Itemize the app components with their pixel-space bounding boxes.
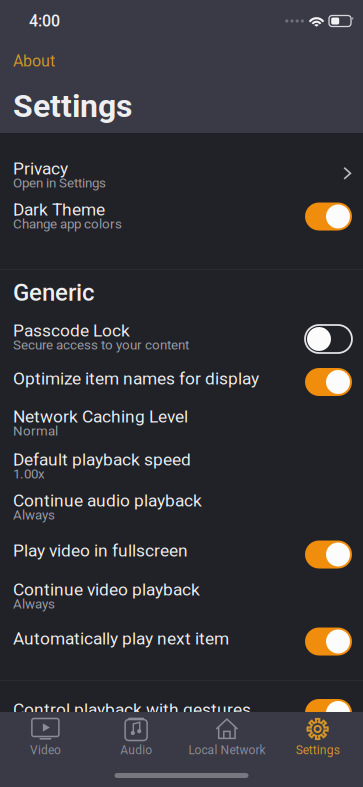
staticText: Dark Theme [13, 199, 105, 220]
button[interactable]: Automatically play next item [0, 623, 363, 660]
button[interactable]: About [0, 42, 363, 80]
staticText: Save video position [13, 737, 161, 758]
staticText: Control playback with gestures [13, 699, 251, 720]
staticText: Settings [13, 87, 132, 125]
staticText: Continue audio playback [13, 490, 202, 511]
button[interactable]: Privacy [0, 153, 363, 194]
staticText: Privacy [13, 158, 68, 179]
button[interactable]: Passcode Lock [0, 315, 363, 363]
staticText: Always [13, 596, 55, 612]
button[interactable]: Video [0, 719, 91, 757]
staticText: Automatically play next item [13, 628, 229, 649]
staticText: Continue video playback [13, 579, 200, 600]
staticText: Change app colors [13, 216, 122, 232]
staticText: Normal [13, 423, 58, 439]
button[interactable]: Network Caching Level [0, 401, 363, 444]
button[interactable]: Continue video playback [0, 574, 363, 623]
staticText: Secure access to your content [13, 337, 189, 353]
staticText: Passcode Lock [13, 320, 130, 341]
staticText: Settings [296, 743, 340, 757]
button[interactable]: Default playback speed [0, 444, 363, 485]
staticText: 1.00x [13, 466, 45, 482]
button[interactable]: Save video position [0, 732, 363, 778]
staticText: Video [30, 743, 61, 757]
staticText: Generic [13, 278, 95, 306]
staticText: Optimize item names for display [13, 368, 259, 389]
button[interactable]: Continue audio playback [0, 485, 363, 535]
staticText: Audio [120, 743, 152, 757]
staticText: Open in Settings [13, 175, 106, 191]
button[interactable]: Play video in fullscreen [0, 535, 363, 574]
button[interactable]: Optimize item names for display [0, 363, 363, 401]
button[interactable]: Settings [272, 719, 363, 757]
staticText: Local Network [188, 743, 265, 757]
staticText: Default playback speed [13, 449, 191, 470]
staticText: About [13, 52, 55, 70]
button[interactable]: Local Network [181, 719, 272, 757]
button[interactable]: Control playback with gestures [0, 694, 363, 732]
button[interactable]: Dark Theme [0, 194, 363, 239]
staticText: 4:00 [29, 12, 60, 30]
staticText: Always [13, 507, 55, 523]
staticText: Network Caching Level [13, 406, 188, 427]
staticText: Play video in fullscreen [13, 540, 188, 561]
button[interactable]: Audio [91, 719, 182, 757]
